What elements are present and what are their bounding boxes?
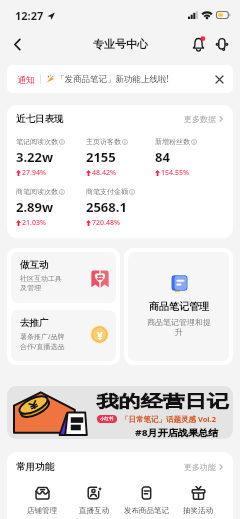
staticText: 21.03% — [22, 218, 46, 228]
button[interactable]: 我的经营日记 — [7, 386, 233, 439]
button[interactable]: 去推广 — [11, 310, 116, 361]
staticText: 做互动 — [20, 259, 49, 271]
staticText: ¥ — [97, 329, 103, 343]
staticText: 专业号中心 — [93, 37, 148, 51]
staticText: 27.94% — [22, 168, 46, 178]
staticText: 社区互动工具 及管理 — [20, 274, 62, 292]
staticText: 12:27 — [15, 8, 44, 23]
staticText: 商笔阅读次数 — [16, 187, 58, 196]
button[interactable]: 更多数据 — [184, 114, 224, 124]
staticText: 2568.1 — [86, 198, 127, 216]
button[interactable]: 近七日表现 — [7, 105, 233, 238]
button[interactable]: 商品笔记管理 — [128, 252, 229, 361]
staticText: 近七日表现 — [16, 113, 64, 125]
staticText: 商笔支付金额 — [86, 187, 128, 196]
staticText: 小红书 — [100, 416, 114, 422]
button[interactable]: 店铺管理 — [16, 486, 68, 515]
staticText: 常用功能 — [16, 461, 54, 473]
staticText: 更多数据 — [184, 114, 216, 124]
staticText: 3.22w — [16, 148, 54, 166]
staticText: 直播互动 — [79, 506, 109, 515]
staticText: 店铺管理 — [27, 506, 57, 515]
staticText: 154.55% — [161, 168, 189, 178]
staticText: 新增粉丝数 — [155, 137, 190, 146]
staticText: 48.42% — [92, 168, 116, 178]
staticText: 商品笔记管理 — [149, 300, 209, 313]
staticText: 抽奖活动 — [183, 506, 213, 515]
button[interactable]: 直播互动 — [68, 486, 120, 515]
staticText: 2155 — [86, 148, 116, 166]
staticText: #8月开店战果总结 — [135, 426, 219, 438]
staticText: 720.48% — [92, 218, 120, 228]
staticText: 笔记阅读次数 — [16, 137, 58, 146]
staticText: 2.89w — [16, 198, 54, 216]
button[interactable]: Notifications — [186, 32, 210, 56]
button[interactable]: 抽奖活动 — [172, 486, 224, 515]
staticText: 商品笔记管理和提升 — [144, 317, 214, 338]
staticText: 薯条推广/品牌 合作/直播选品 — [20, 332, 65, 352]
staticText: 我的经营日记 — [96, 392, 229, 412]
staticText: 84 — [155, 148, 170, 166]
staticText: 「发商品笔记」新功能上线啦! — [56, 73, 169, 85]
button[interactable]: Customer service — [210, 32, 234, 56]
button[interactable]: 做互动 — [11, 252, 116, 303]
button[interactable]: Back — [5, 32, 29, 56]
staticText: 发布商品笔记 — [124, 506, 169, 515]
staticText: 主页访客数 — [86, 137, 121, 146]
button[interactable]: 通知 — [7, 65, 233, 93]
staticText: 去推广 — [20, 317, 49, 329]
button[interactable]: 更多功能 — [184, 462, 224, 472]
button[interactable]: 发布商品笔记 — [120, 486, 172, 515]
button[interactable]: Close notice — [212, 72, 226, 86]
staticText: 「日常笔记」话题灵感 Vol.2 — [121, 414, 216, 424]
staticText: 更多功能 — [184, 462, 216, 472]
staticText: 通知 — [17, 74, 35, 85]
